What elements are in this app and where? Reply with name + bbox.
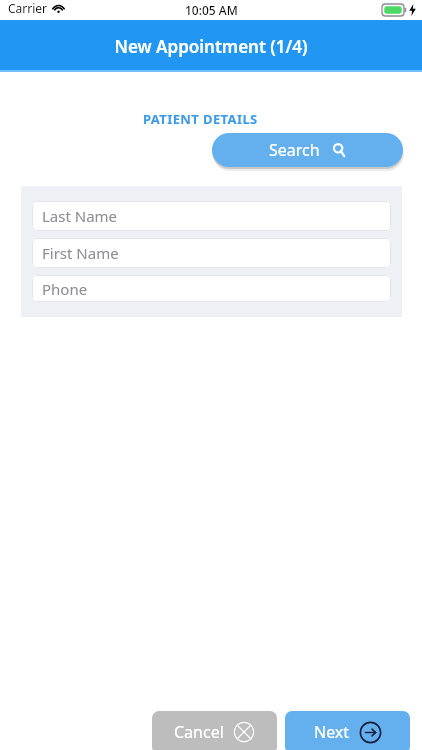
other: Cancel (233, 721, 255, 743)
button[interactable]: Next (285, 711, 410, 750)
button[interactable]: Last Name (32, 201, 391, 231)
staticText: Search (269, 139, 320, 161)
button[interactable]: Phone (32, 275, 391, 302)
staticText: PATIENT DETAILS (143, 110, 258, 128)
staticText: 10:05 AM (185, 2, 238, 18)
staticText: First Name (42, 243, 119, 263)
staticText: Carrier (8, 0, 48, 16)
button[interactable]: Search (212, 133, 403, 167)
button[interactable]: First Name (32, 238, 391, 268)
other: Next (359, 721, 382, 744)
staticText: Cancel (174, 721, 224, 743)
staticText: Next (314, 721, 350, 743)
staticText: Last Name (42, 206, 118, 226)
button[interactable]: Cancel (152, 711, 277, 750)
staticText: New Appointment (1/4) (114, 35, 308, 58)
staticText: Phone (42, 279, 88, 299)
